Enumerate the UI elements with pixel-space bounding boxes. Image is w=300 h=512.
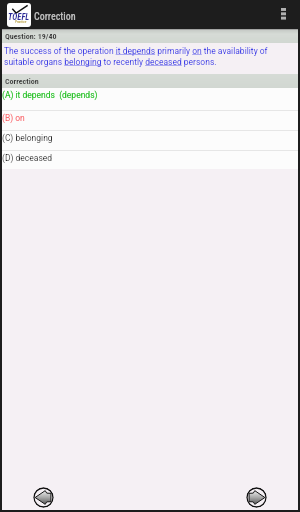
button[interactable]: (A) it depends (depends) [0, 88, 300, 111]
staticText: Practice [15, 20, 27, 24]
staticText: Correction [34, 11, 76, 23]
staticText: Correction [5, 77, 39, 86]
button[interactable]: More options [272, 0, 294, 29]
button[interactable]: (C) belonging [0, 131, 300, 151]
button[interactable]: (D) deceased [0, 151, 300, 169]
staticText: (A) it depends (depends) [2, 90, 98, 100]
staticText: TOEFL [8, 12, 30, 22]
staticText: Question: 19/40 [5, 32, 57, 41]
staticText: The success of the operation it depends … [4, 46, 296, 67]
button[interactable]: TOEFL Practice app icon [7, 3, 31, 27]
staticText: (C) belonging [2, 133, 53, 143]
button[interactable]: (B) on [0, 111, 300, 131]
staticText: (B) on [2, 113, 25, 123]
button[interactable]: Next question [246, 487, 267, 508]
button[interactable]: Previous question [33, 487, 54, 508]
staticText: (D) deceased [2, 153, 53, 163]
